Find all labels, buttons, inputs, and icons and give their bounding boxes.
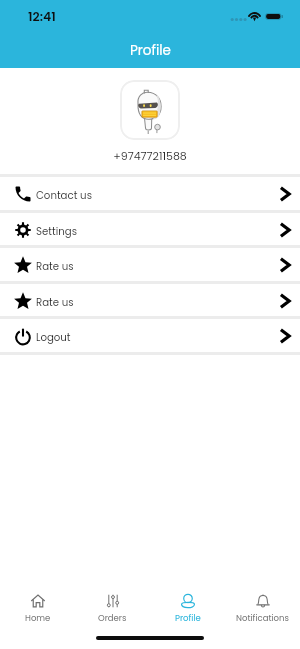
button[interactable]: Home <box>0 594 75 624</box>
staticText: +97477211588 <box>0 148 300 163</box>
button[interactable]: Logout <box>0 319 300 352</box>
button[interactable]: Orders <box>75 594 150 624</box>
staticText: Profile <box>130 41 171 60</box>
staticText: Notifications <box>236 612 289 624</box>
button[interactable]: Contact us <box>0 177 300 210</box>
staticText: Profile <box>175 612 201 624</box>
staticText: Logout <box>36 330 71 344</box>
staticText: Orders <box>98 612 127 624</box>
staticText: Rate us <box>36 295 74 309</box>
button[interactable]: Settings <box>0 213 300 246</box>
staticText: Contact us <box>36 188 92 202</box>
button[interactable]: Rate us <box>0 284 300 317</box>
button[interactable]: Profile <box>150 594 225 624</box>
button[interactable]: Rate us <box>0 248 300 281</box>
staticText: Rate us <box>36 259 74 273</box>
button[interactable]: Notifications <box>225 594 300 624</box>
staticText: 12:41 <box>28 8 56 25</box>
staticText: Home <box>25 612 51 624</box>
staticText: Settings <box>36 224 77 238</box>
